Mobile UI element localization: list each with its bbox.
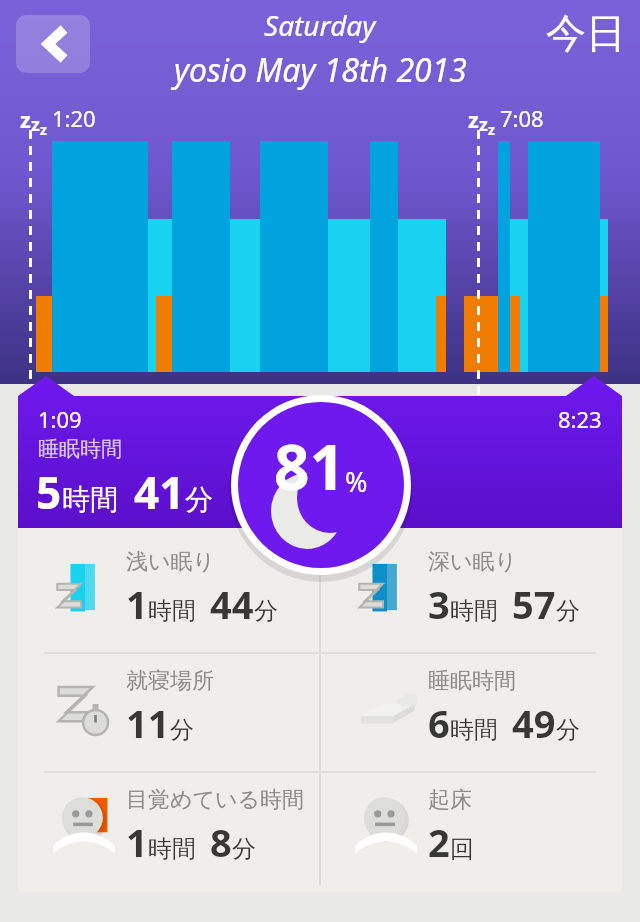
staticText: 睡眠時間 <box>428 667 516 695</box>
staticText: 浅い眠り <box>126 548 216 576</box>
staticText: 44 <box>210 578 254 630</box>
staticText: 11 <box>126 697 170 749</box>
button[interactable]: 深い眠り <box>320 528 622 647</box>
staticText: 時間 <box>450 715 498 745</box>
staticText: 分 <box>254 596 278 626</box>
button[interactable]: 就寝場所 <box>18 647 320 766</box>
button[interactable]: Back <box>16 15 90 73</box>
staticText: 1 <box>126 578 148 630</box>
staticText: 目覚めている時間 <box>126 786 305 814</box>
staticText: 分 <box>170 715 194 745</box>
staticText: yosio May 18th 2013 <box>174 48 467 92</box>
staticText: 1:20 <box>52 103 96 133</box>
staticText: 時間 <box>450 596 498 626</box>
staticText: % <box>345 463 368 500</box>
button[interactable]: 目覚めている時間 <box>18 766 320 885</box>
staticText: 分 <box>232 834 256 864</box>
staticText: 分 <box>556 596 580 626</box>
button[interactable]: 起床 <box>320 766 622 885</box>
staticText: 時間 <box>62 482 118 517</box>
staticText: z <box>40 120 47 139</box>
staticText: 41 <box>134 462 185 522</box>
staticText: z <box>488 120 495 139</box>
staticText: 3 <box>428 578 450 630</box>
staticText: 57 <box>512 578 556 630</box>
button[interactable]: 浅い眠り <box>18 528 320 647</box>
staticText: 時間 <box>148 834 196 864</box>
staticText: 6 <box>428 697 450 749</box>
staticText: 1:09 <box>38 404 82 434</box>
staticText: z <box>479 112 488 137</box>
staticText: 睡眠時間 <box>38 436 122 462</box>
staticText: 2 <box>428 816 450 868</box>
staticText: 時間 <box>148 596 196 626</box>
staticText: z <box>20 104 31 134</box>
staticText: 8:23 <box>558 404 602 434</box>
staticText: z <box>468 104 479 134</box>
staticText: 81 <box>274 424 345 508</box>
staticText: 分 <box>556 715 580 745</box>
staticText: 8 <box>210 816 232 868</box>
staticText: z <box>31 112 40 137</box>
staticText: 5 <box>36 462 62 522</box>
staticText: 就寝場所 <box>126 667 214 695</box>
staticText: 49 <box>512 697 556 749</box>
staticText: 分 <box>185 482 213 517</box>
staticText: 1 <box>126 816 148 868</box>
staticText: Saturday <box>264 6 376 44</box>
button[interactable]: 睡眠時間 <box>320 647 622 766</box>
staticText: 起床 <box>428 786 472 814</box>
staticText: 深い眠り <box>428 548 518 576</box>
staticText: 回 <box>450 834 474 864</box>
staticText: 今日 <box>546 8 626 58</box>
staticText: 7:08 <box>500 103 544 133</box>
button[interactable]: 今日 <box>546 8 626 58</box>
